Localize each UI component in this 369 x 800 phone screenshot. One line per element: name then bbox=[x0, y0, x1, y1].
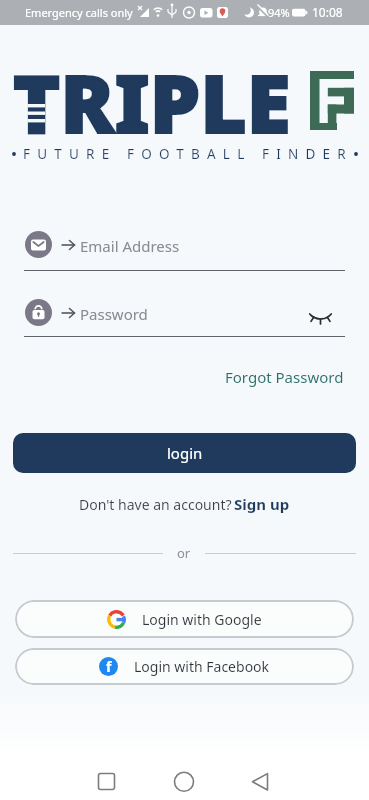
staticText: Login with Google bbox=[142, 610, 262, 629]
button[interactable]: Login with Google bbox=[15, 600, 354, 638]
button[interactable]: Sign up bbox=[234, 494, 290, 514]
staticText: 94% bbox=[268, 5, 290, 20]
staticText: TRIPLE bbox=[13, 47, 291, 156]
staticText: FUTURE FOOTBALL FINDER bbox=[23, 145, 353, 163]
staticText: Email Address bbox=[80, 236, 180, 256]
button[interactable] bbox=[123, 765, 246, 800]
staticText: login bbox=[167, 443, 203, 463]
button[interactable]: Forgot Password bbox=[225, 367, 344, 387]
staticText: Emergency calls only bbox=[25, 5, 133, 20]
staticText: Login with Facebook bbox=[134, 657, 270, 676]
staticText: or bbox=[177, 544, 191, 562]
button[interactable] bbox=[0, 765, 123, 800]
staticText: 10:08 bbox=[312, 4, 343, 20]
staticText: Don't have an account? bbox=[79, 495, 232, 514]
staticText: Password bbox=[80, 304, 148, 324]
staticText: TRIPLE bbox=[13, 47, 291, 156]
button[interactable]: login bbox=[13, 433, 356, 473]
button[interactable] bbox=[246, 765, 369, 800]
staticText: f bbox=[106, 657, 112, 676]
button[interactable]: f bbox=[15, 648, 354, 685]
